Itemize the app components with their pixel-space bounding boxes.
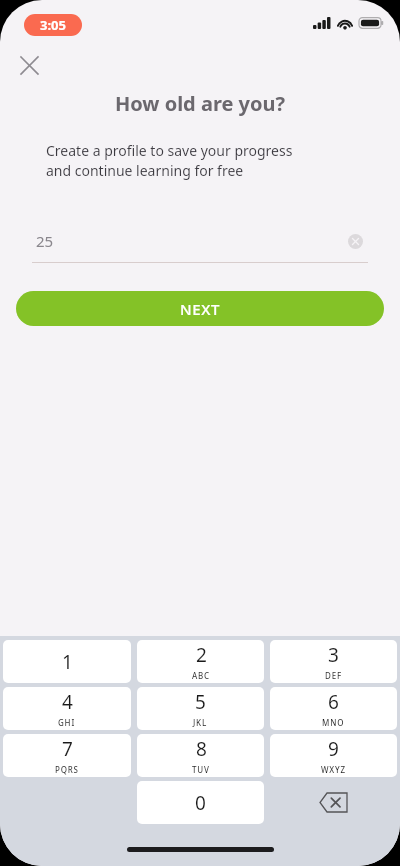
button[interactable]: 7 [3, 734, 131, 777]
staticText: NEXT [180, 299, 220, 319]
staticText: TUV [192, 764, 210, 775]
staticText: How old are you? [0, 90, 400, 117]
staticText: 0 [195, 790, 206, 816]
button[interactable]: Close [13, 49, 45, 81]
staticText: 8 [196, 736, 207, 762]
staticText: 1 [62, 649, 73, 675]
staticText: 3 [328, 642, 339, 668]
staticText: 6 [328, 689, 339, 715]
button[interactable]: 5 [137, 687, 264, 730]
staticText: 3:05 [40, 16, 66, 34]
button[interactable]: NEXT [16, 291, 384, 326]
button[interactable]: Backspace [270, 781, 397, 824]
staticText: PQRS [55, 764, 79, 775]
staticText: Create a profile to save your progress a… [46, 141, 376, 181]
button[interactable]: 6 [270, 687, 397, 730]
staticText: JKL [193, 717, 208, 728]
button[interactable]: 0 [137, 781, 264, 824]
staticText: 5 [195, 689, 206, 715]
staticText: ABC [192, 670, 210, 681]
button[interactable]: Clear text [342, 228, 368, 254]
staticText: 25 [36, 231, 54, 251]
staticText: 7 [62, 736, 73, 762]
button[interactable]: 1 [3, 640, 131, 683]
button[interactable]: 2 [137, 640, 264, 683]
staticText: GHI [58, 717, 76, 728]
staticText: WXYZ [321, 764, 346, 775]
button[interactable]: 4 [3, 687, 131, 730]
staticText: DEF [325, 670, 342, 681]
button[interactable]: 25 [32, 228, 368, 263]
button[interactable]: 9 [270, 734, 397, 777]
staticText: 2 [196, 642, 207, 668]
staticText: 9 [328, 736, 339, 762]
staticText: 4 [62, 689, 73, 715]
staticText: MNO [322, 717, 345, 728]
button[interactable]: 3 [270, 640, 397, 683]
button[interactable]: 8 [137, 734, 264, 777]
